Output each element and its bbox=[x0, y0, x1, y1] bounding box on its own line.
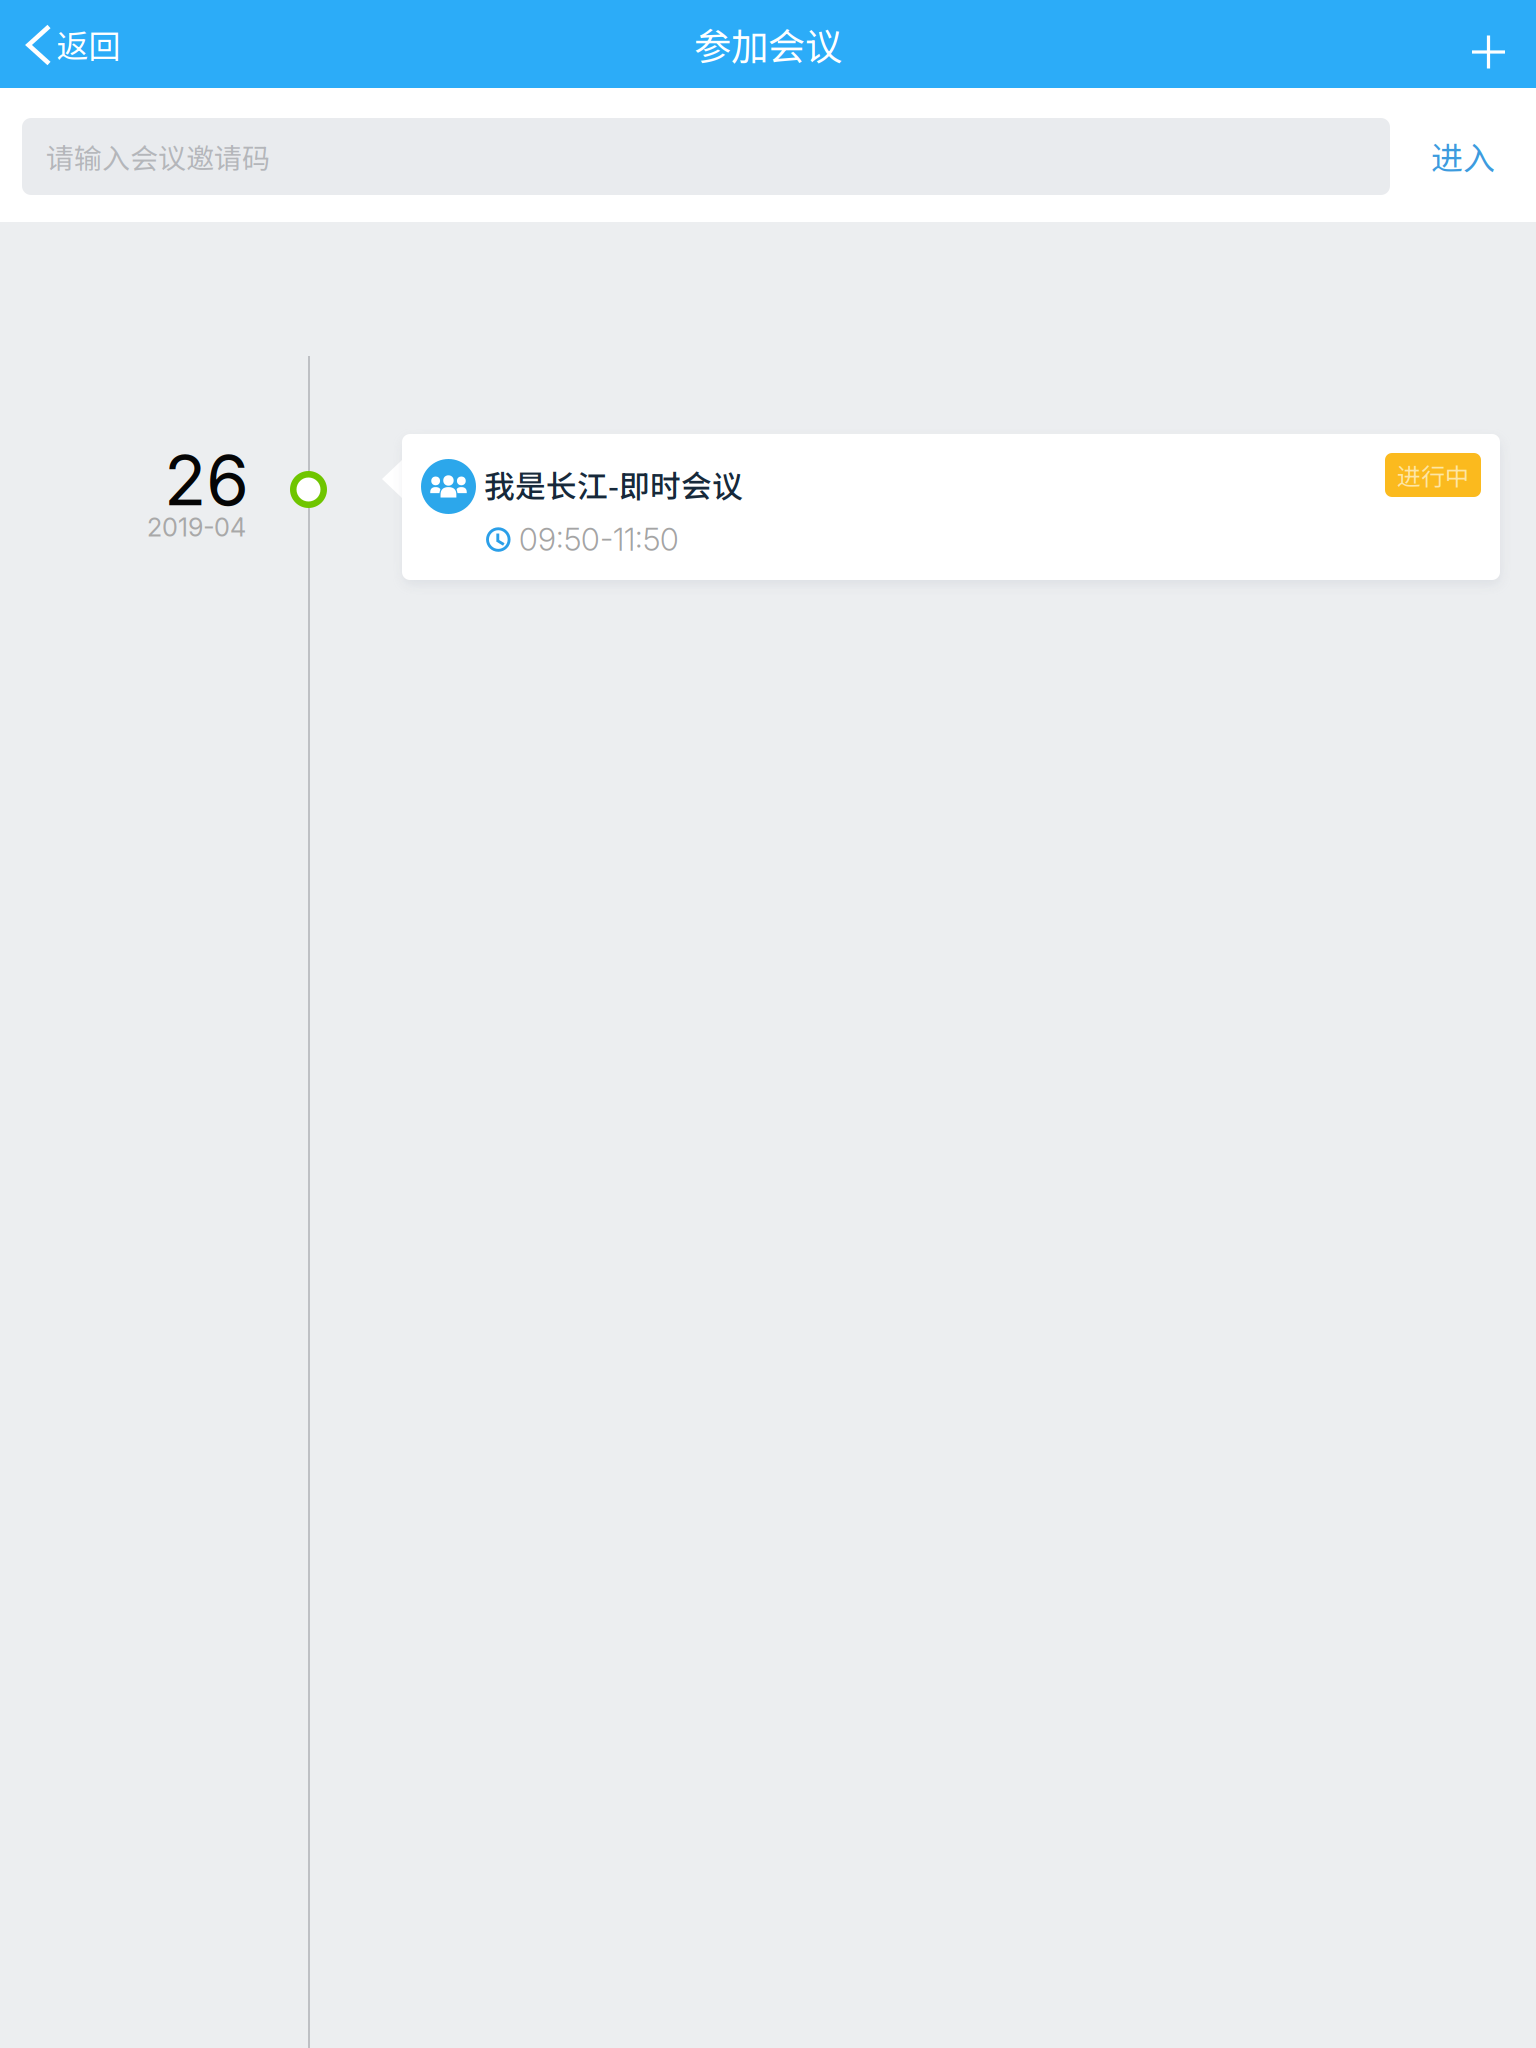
staticText: 进入 bbox=[1431, 133, 1495, 179]
staticText: 请输入会议邀请码 bbox=[46, 136, 270, 177]
staticText: 2019-04 bbox=[147, 512, 246, 543]
staticText: 09:50-11:50 bbox=[519, 521, 679, 558]
button[interactable]: 返回 bbox=[0, 0, 146, 88]
button[interactable]: 请输入会议邀请码 bbox=[22, 118, 1390, 195]
staticText: 26 bbox=[164, 438, 249, 522]
staticText: 进行中 bbox=[1397, 458, 1469, 492]
staticText: 我是长江-即时会议 bbox=[484, 462, 743, 506]
button[interactable]: 新建会议 bbox=[1441, 0, 1536, 88]
staticText: 返回 bbox=[56, 21, 120, 67]
button[interactable]: 我是长江-即时会议 bbox=[382, 434, 1501, 580]
staticText: 参加会议 bbox=[694, 17, 842, 71]
button[interactable]: 进入 bbox=[1401, 112, 1525, 200]
